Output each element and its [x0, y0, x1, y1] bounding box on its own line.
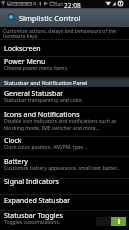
staticText: Statusbar transparency and color.	[4, 97, 83, 104]
button[interactable]: Lockscreen	[0, 40, 129, 56]
staticText: Sun	[55, 1, 64, 7]
staticText: Icons and Notifications	[4, 110, 80, 120]
button[interactable]: Signal Indicators	[0, 179, 129, 194]
staticText: Customize actions, delays and behaviours…	[3, 28, 117, 39]
button[interactable]: Power Menu	[0, 57, 129, 77]
staticText: 22:08	[64, 1, 81, 9]
staticText: General Statusbar	[4, 89, 64, 99]
button[interactable]: Statusbar Toggles	[0, 211, 129, 230]
staticText: Power Menu	[4, 57, 46, 67]
staticText: Statusbar and Notification Panel	[4, 79, 88, 86]
staticText: Choose power menu items.	[4, 65, 69, 72]
staticText: Clock	[4, 136, 22, 146]
staticText: Customize battery appearance, small text…	[4, 165, 122, 172]
staticText: Toggles customizations.	[4, 219, 61, 226]
staticText: Lockscreen	[4, 44, 41, 54]
button[interactable]: Icons and Notifications	[0, 107, 129, 136]
staticText: Battery	[4, 157, 28, 167]
button[interactable]: Expanded Statusbar	[0, 195, 129, 210]
button[interactable]: Clock	[0, 137, 129, 156]
staticText: Statusbar Toggles	[4, 211, 63, 221]
button[interactable]: Statusbar Toggles switch, on	[96, 217, 126, 226]
staticText: Disable icon indicators and notification…	[4, 118, 122, 131]
staticText: Clock color, position, AM/PM, type...	[4, 144, 88, 151]
staticText: Signal Indicators	[4, 177, 59, 187]
button[interactable]: Statusbar and Notification Panel	[0, 77, 129, 87]
staticText: Expanded Statusbar	[4, 196, 71, 206]
staticText: Simplistic Control	[19, 13, 81, 23]
button[interactable]: Battery	[0, 157, 129, 178]
button[interactable]: General Statusbar	[0, 87, 129, 106]
